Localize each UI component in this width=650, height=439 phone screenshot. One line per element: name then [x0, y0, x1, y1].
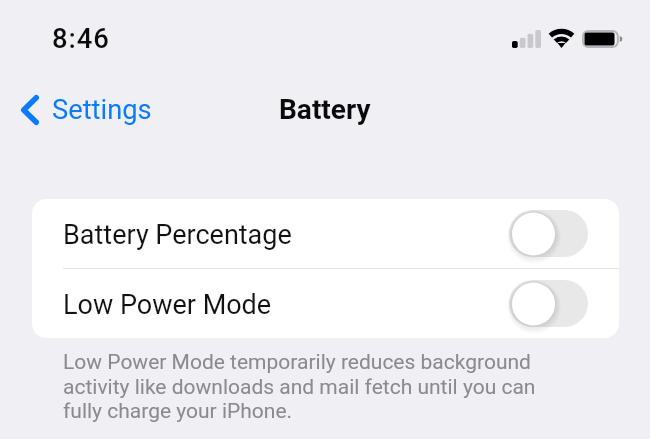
staticText: Low Power Mode temporarily reduces backg…: [63, 350, 550, 423]
button[interactable]: Battery Percentage: [32, 199, 619, 268]
button[interactable]: Low Power Mode, off: [509, 280, 588, 327]
button[interactable]: Settings: [0, 88, 166, 152]
staticText: Settings: [52, 94, 152, 126]
staticText: Low Power Mode: [63, 289, 272, 321]
button[interactable]: Low Power Mode: [32, 269, 619, 338]
staticText: 8:46: [52, 22, 110, 54]
staticText: Battery: [279, 93, 371, 126]
button[interactable]: Battery Percentage, off: [509, 210, 588, 257]
staticText: Battery Percentage: [63, 219, 292, 251]
